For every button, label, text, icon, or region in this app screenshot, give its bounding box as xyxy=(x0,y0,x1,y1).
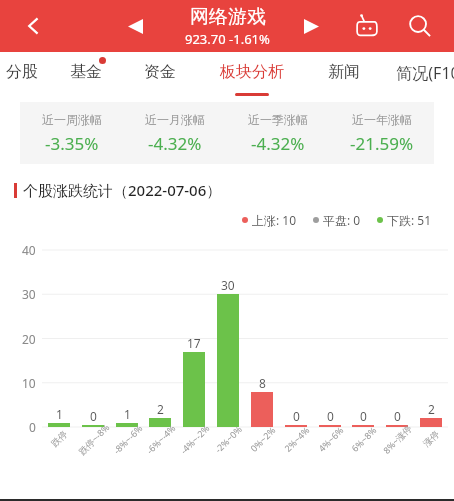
button[interactable] xyxy=(149,418,171,427)
staticText: 0 xyxy=(394,408,401,424)
staticText: 分股 xyxy=(6,62,38,82)
staticText: 8%~涨停 xyxy=(380,422,414,456)
staticText: 跌停~-8% xyxy=(75,421,112,457)
button[interactable]: 近一月涨幅 xyxy=(123,112,226,155)
staticText: 8 xyxy=(259,375,266,391)
staticText: -8%~-6% xyxy=(110,422,145,456)
staticText: 6%~8% xyxy=(348,424,379,454)
staticText: 跌停 xyxy=(49,428,69,449)
staticText: 网络游戏 xyxy=(190,5,266,29)
staticText: 基金 xyxy=(70,62,102,82)
button[interactable] xyxy=(116,423,138,427)
button[interactable]: 分股 xyxy=(0,52,66,98)
staticText: 20 xyxy=(22,331,36,347)
staticText: 涨停 xyxy=(421,428,441,449)
staticText: 上涨: 10 xyxy=(252,212,297,228)
staticText: -6%~-4% xyxy=(143,422,178,456)
staticText: 个股涨跌统计（2022-07-06） xyxy=(23,180,222,200)
staticText: -4.32% xyxy=(251,132,305,155)
staticText: 0 xyxy=(90,408,97,424)
button[interactable]: Search xyxy=(400,6,440,46)
staticText: 10 xyxy=(22,375,36,391)
staticText: 1 xyxy=(124,406,131,422)
staticText: 923.70 -1.61% xyxy=(185,30,270,48)
button[interactable]: 资金 xyxy=(116,52,204,98)
staticText: 近一月涨幅 xyxy=(145,112,205,127)
staticText: 30 xyxy=(22,286,36,302)
button[interactable]: 近一年涨幅 xyxy=(330,112,434,155)
staticText: 近一周涨幅 xyxy=(42,112,102,127)
staticText: -3.35% xyxy=(45,132,99,155)
staticText: -21.59% xyxy=(350,132,414,155)
staticText: -4%~-2% xyxy=(177,422,212,456)
button[interactable]: Back xyxy=(14,6,54,46)
button[interactable]: Assistant xyxy=(347,6,387,46)
button[interactable] xyxy=(386,425,408,427)
staticText: 近一季涨幅 xyxy=(248,112,308,127)
staticText: 40 xyxy=(22,242,36,258)
staticText: 2%~4% xyxy=(281,424,312,454)
staticText: 0 xyxy=(360,408,367,424)
staticText: 平盘: 0 xyxy=(323,212,361,228)
staticText: -4.32% xyxy=(148,132,202,155)
staticText: 4%~6% xyxy=(315,424,346,454)
staticText: 近一年涨幅 xyxy=(352,112,412,127)
button[interactable]: Next xyxy=(294,9,328,43)
button[interactable]: 近一季涨幅 xyxy=(226,112,330,155)
staticText: 2 xyxy=(157,401,164,417)
staticText: 新闻 xyxy=(328,62,360,82)
staticText: 资金 xyxy=(144,62,176,82)
staticText: 0 xyxy=(29,419,36,435)
staticText: 下跌: 51 xyxy=(387,212,432,228)
staticText: 17 xyxy=(187,335,201,351)
staticText: 30 xyxy=(221,277,235,293)
button[interactable]: 板块分析 xyxy=(208,52,296,98)
staticText: -2%~0% xyxy=(212,423,244,455)
staticText: 简况(F10 xyxy=(396,62,454,84)
button[interactable]: 近一周涨幅 xyxy=(20,112,123,155)
button[interactable]: Previous xyxy=(118,9,152,43)
button[interactable]: 简况(F10 xyxy=(384,52,454,98)
button[interactable]: 基金 xyxy=(42,52,130,98)
staticText: 0 xyxy=(327,408,334,424)
staticText: 2 xyxy=(428,401,435,417)
staticText: 0%~2% xyxy=(247,424,278,454)
staticText: 1 xyxy=(56,406,63,422)
staticText: 0 xyxy=(293,408,300,424)
button[interactable]: 新闻 xyxy=(300,52,388,98)
staticText: 板块分析 xyxy=(220,62,284,82)
